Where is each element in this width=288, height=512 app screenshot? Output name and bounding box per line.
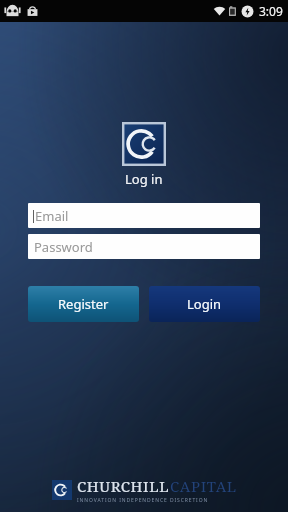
staticText: Password (34, 238, 93, 256)
staticText: Register (58, 295, 109, 313)
staticText: Log in (125, 170, 163, 188)
button[interactable]: Login (149, 286, 260, 322)
staticText: Login (187, 295, 222, 313)
staticText: CHURCHILL (77, 476, 170, 496)
button[interactable]: Email (28, 203, 260, 228)
button[interactable]: Password (28, 234, 260, 259)
staticText: Email (35, 207, 69, 225)
button[interactable]: Register (28, 286, 139, 322)
staticText: CAPITAL (170, 476, 237, 496)
staticText: 3:09 (259, 3, 283, 19)
staticText: INNOVATION INDEPENDENCE DISCRETION (77, 497, 209, 504)
